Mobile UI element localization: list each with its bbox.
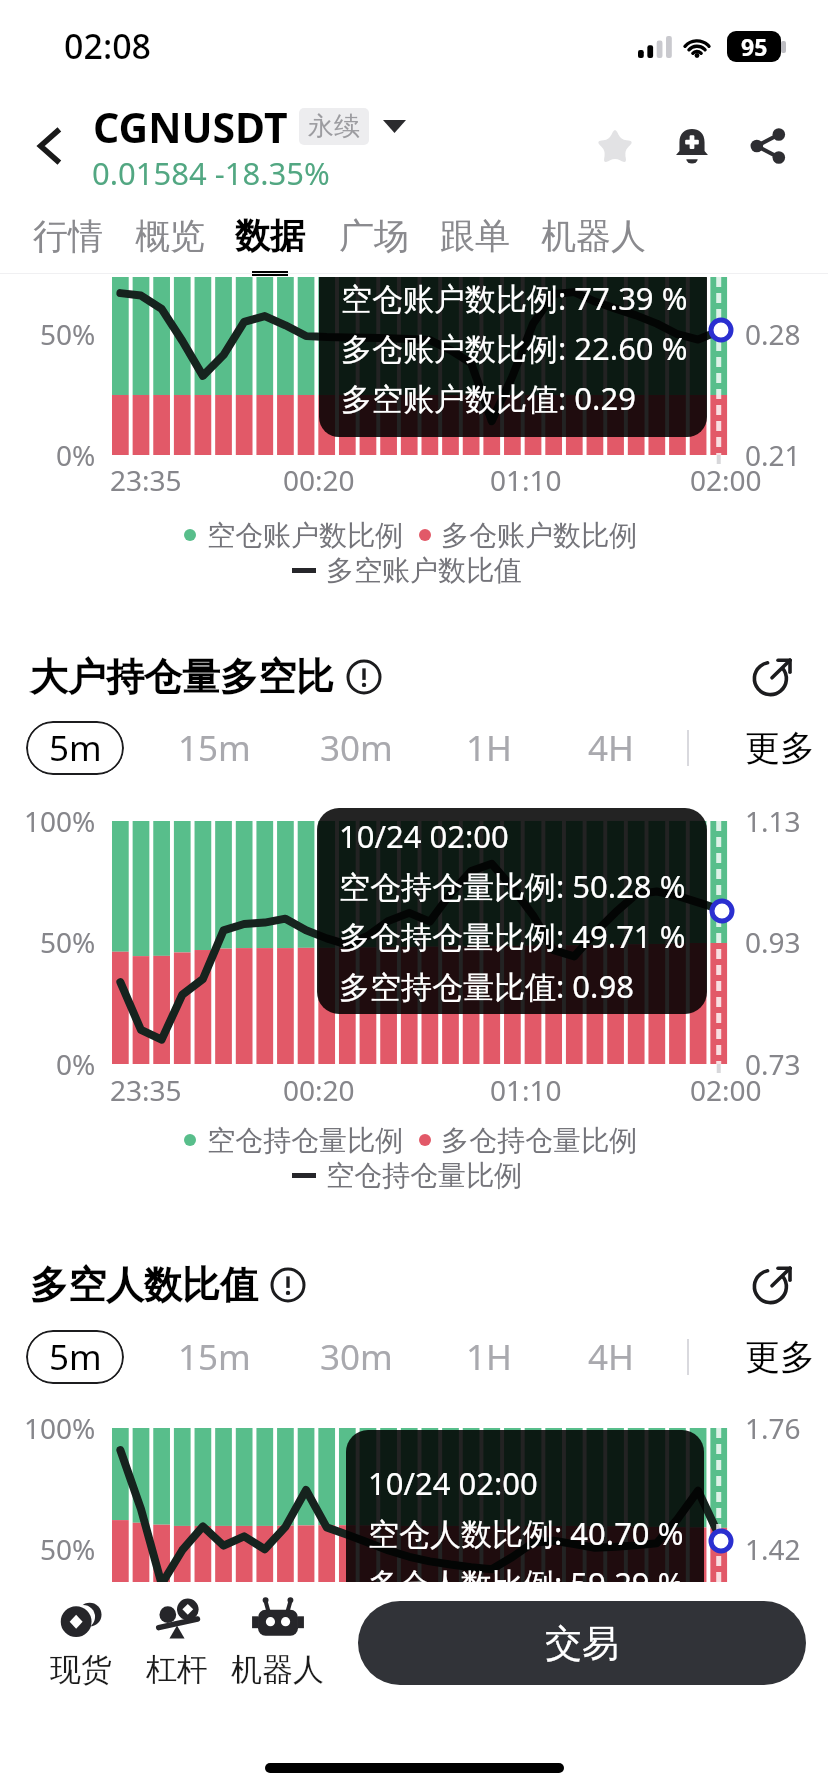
button[interactable]: 30m [320, 1330, 393, 1384]
staticText: 0.93 [745, 923, 801, 961]
staticText: 大户持仓量多空比 [30, 653, 334, 701]
staticText: CGNUSDT [93, 99, 288, 153]
staticText: 0.73 [745, 1045, 801, 1083]
staticText: 永续 [308, 110, 360, 143]
staticText: 杠杆 [146, 1650, 208, 1689]
staticText: 0.01584 -18.35% [92, 152, 330, 192]
button[interactable]: 杠杆 [121, 1592, 233, 1692]
staticText: 50% [40, 1530, 96, 1568]
staticText: 30m [320, 724, 393, 772]
button[interactable]: 5m [26, 721, 124, 775]
button[interactable]: Back [14, 110, 86, 182]
button[interactable]: 更多 [745, 1330, 815, 1384]
staticText: 00:20 [283, 1071, 355, 1109]
staticText: 95 [741, 31, 768, 62]
button[interactable]: 更多 [745, 721, 815, 775]
button[interactable]: Favorite [581, 112, 649, 180]
staticText: 多仓账户数比例: 22.60 % [341, 327, 688, 369]
staticText: 100% [24, 802, 96, 840]
staticText: 跟单 [440, 214, 510, 258]
staticText: 5m [49, 724, 102, 772]
staticText: 02:00 [690, 461, 762, 499]
staticText: 15m [178, 724, 251, 772]
staticText: 0% [56, 1045, 96, 1083]
staticText: 广场 [339, 214, 409, 258]
staticText: 5m [49, 1333, 102, 1381]
staticText: 1.76 [745, 1409, 801, 1447]
staticText: 空仓持仓量比例: 50.28 % [339, 865, 686, 907]
button[interactable]: 1H [466, 721, 512, 775]
staticText: 多空账户数比值 [326, 553, 522, 588]
staticText: 多仓持仓量比例: 49.71 % [339, 915, 686, 957]
button[interactable]: Price alert [658, 112, 726, 180]
staticText: 交易 [545, 1620, 619, 1667]
button[interactable]: 5m [26, 1330, 124, 1384]
button[interactable]: 1H [466, 1330, 512, 1384]
staticText: 1H [466, 724, 512, 772]
staticText: 50% [40, 923, 96, 961]
staticText: 机器人 [231, 1650, 324, 1689]
staticText: 30m [320, 1333, 393, 1381]
staticText: 现货 [50, 1650, 112, 1689]
staticText: 15m [178, 1333, 251, 1381]
staticText: 1.42 [745, 1530, 801, 1568]
button[interactable]: 交易 [358, 1601, 806, 1685]
button[interactable]: 30m [320, 721, 393, 775]
staticText: 10/24 02:00 [368, 1462, 538, 1504]
staticText: 空仓人数比例: 40.70 % [368, 1512, 684, 1554]
button[interactable]: 现货 [25, 1592, 137, 1692]
staticText: 多空持仓量比值: 0.98 [339, 965, 634, 1007]
staticText: 4H [588, 1333, 634, 1381]
staticText: 概览 [135, 214, 205, 258]
staticText: 空仓账户数比例 [207, 518, 403, 553]
button[interactable]: 跟单 [431, 202, 519, 270]
staticText: 100% [24, 1409, 96, 1447]
staticText: 多空账户数比值: 0.29 [341, 377, 636, 419]
staticText: 0.21 [745, 436, 801, 474]
staticText: 数据 [235, 214, 305, 258]
staticText: 4H [588, 724, 634, 772]
button[interactable]: 数据 [226, 202, 314, 270]
button[interactable]: Expand chart [746, 1259, 798, 1311]
staticText: 空仓账户数比例: 77.39 % [341, 277, 688, 319]
staticText: 多仓账户数比例 [441, 518, 637, 553]
staticText: 01:10 [490, 1071, 562, 1109]
staticText: 0.28 [745, 315, 801, 353]
staticText: 空仓持仓量比例 [326, 1158, 522, 1193]
staticText: 0% [56, 436, 96, 474]
staticText: 1.13 [745, 802, 801, 840]
button[interactable]: 行情 [24, 202, 112, 270]
staticText: 多仓人数比例: 59.29 % [368, 1562, 684, 1582]
button[interactable]: 4H [588, 1330, 634, 1384]
button[interactable]: 4H [588, 721, 634, 775]
button[interactable]: 15m [178, 721, 251, 775]
staticText: 02:00 [690, 1071, 762, 1109]
staticText: 01:10 [490, 461, 562, 499]
staticText: 10/24 02:00 [339, 815, 509, 857]
staticText: 23:35 [110, 461, 182, 499]
staticText: 多仓持仓量比例 [441, 1123, 637, 1158]
staticText: 02:08 [64, 23, 152, 69]
staticText: 更多 [745, 1335, 815, 1379]
staticText: 50% [40, 315, 96, 353]
staticText: 多空人数比值 [30, 1261, 258, 1309]
button[interactable]: 机器人 [221, 1592, 333, 1692]
staticText: 机器人 [541, 214, 646, 258]
staticText: 00:20 [283, 461, 355, 499]
button[interactable]: 广场 [330, 202, 418, 270]
button[interactable]: 概览 [126, 202, 214, 270]
staticText: 行情 [33, 214, 103, 258]
staticText: 23:35 [110, 1071, 182, 1109]
button[interactable]: Expand chart [746, 651, 798, 703]
button[interactable]: Share [734, 112, 802, 180]
button[interactable]: 15m [178, 1330, 251, 1384]
staticText: 空仓持仓量比例 [207, 1123, 403, 1158]
staticText: 1H [466, 1333, 512, 1381]
button[interactable]: 机器人 [533, 202, 653, 270]
staticText: 更多 [745, 726, 815, 770]
